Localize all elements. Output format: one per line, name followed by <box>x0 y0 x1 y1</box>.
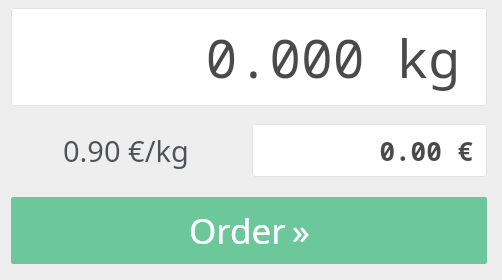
staticText: » <box>292 207 310 255</box>
button[interactable]: Order <box>11 197 487 264</box>
staticText: 0.90 €/kg <box>63 131 189 170</box>
staticText: 0.00 € <box>379 133 473 168</box>
button[interactable]: 0.000 kg <box>11 8 487 106</box>
staticText: 0.000 kg <box>205 21 460 93</box>
button[interactable]: 0.00 € <box>252 124 487 177</box>
staticText: Order <box>189 207 286 255</box>
